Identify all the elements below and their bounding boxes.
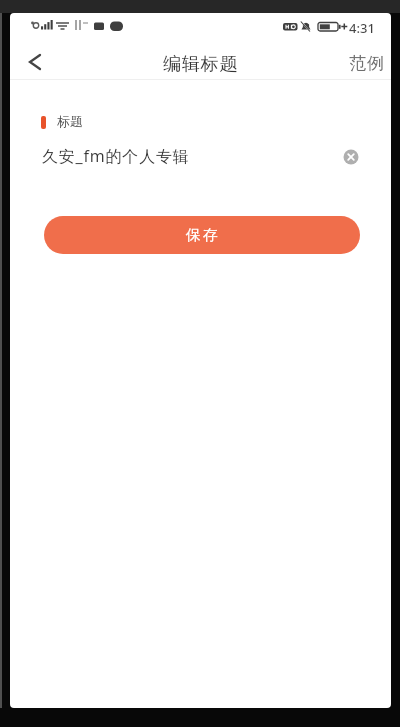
button[interactable]: 范例	[342, 50, 392, 76]
staticText: 久安_fm的个人专辑	[42, 145, 190, 167]
staticText: 保存	[185, 226, 219, 245]
staticText: 4:31	[349, 19, 375, 37]
button[interactable]: 保存	[44, 216, 360, 254]
staticText: 范例	[349, 53, 386, 74]
staticText: 编辑标题	[163, 53, 239, 76]
button[interactable]: 久安_fm的个人专辑	[30, 140, 370, 172]
button[interactable]	[18, 48, 52, 76]
staticText: 标题	[57, 113, 83, 129]
button[interactable]	[343, 149, 359, 165]
